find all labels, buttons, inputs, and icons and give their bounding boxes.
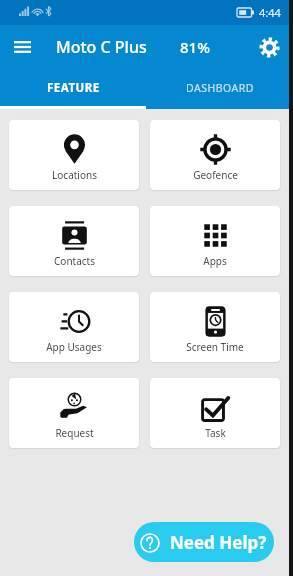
button[interactable]: Settings (247, 25, 291, 69)
button[interactable]: Contacts (9, 206, 139, 276)
button[interactable]: Geofence (150, 120, 280, 190)
staticText: 81% (180, 37, 210, 57)
staticText: App Usages (46, 340, 102, 354)
staticText: Task (205, 426, 226, 440)
staticText: Moto C Plus (56, 36, 147, 58)
staticText: Screen Time (186, 340, 244, 354)
button[interactable]: Screen Time (150, 292, 280, 362)
staticText: Apps (203, 254, 227, 268)
button[interactable]: App Usages (9, 292, 139, 362)
staticText: Geofence (193, 168, 238, 182)
staticText: Need Help? (170, 531, 267, 554)
staticText: Locations (52, 168, 97, 182)
staticText: DASHBOARD (186, 81, 254, 95)
button[interactable]: FEATURE (0, 69, 146, 106)
button[interactable]: Locations (9, 120, 139, 190)
staticText: 4:44 (259, 5, 281, 20)
button[interactable]: Open navigation menu (0, 25, 44, 69)
button[interactable]: Apps (150, 206, 280, 276)
button[interactable]: Request (9, 378, 139, 448)
staticText: Contacts (54, 254, 95, 268)
staticText: FEATURE (47, 80, 100, 96)
button[interactable]: Need Help? (134, 522, 274, 562)
button[interactable]: Task (150, 378, 280, 448)
staticText: Request (55, 426, 94, 440)
button[interactable]: DASHBOARD (146, 69, 293, 106)
